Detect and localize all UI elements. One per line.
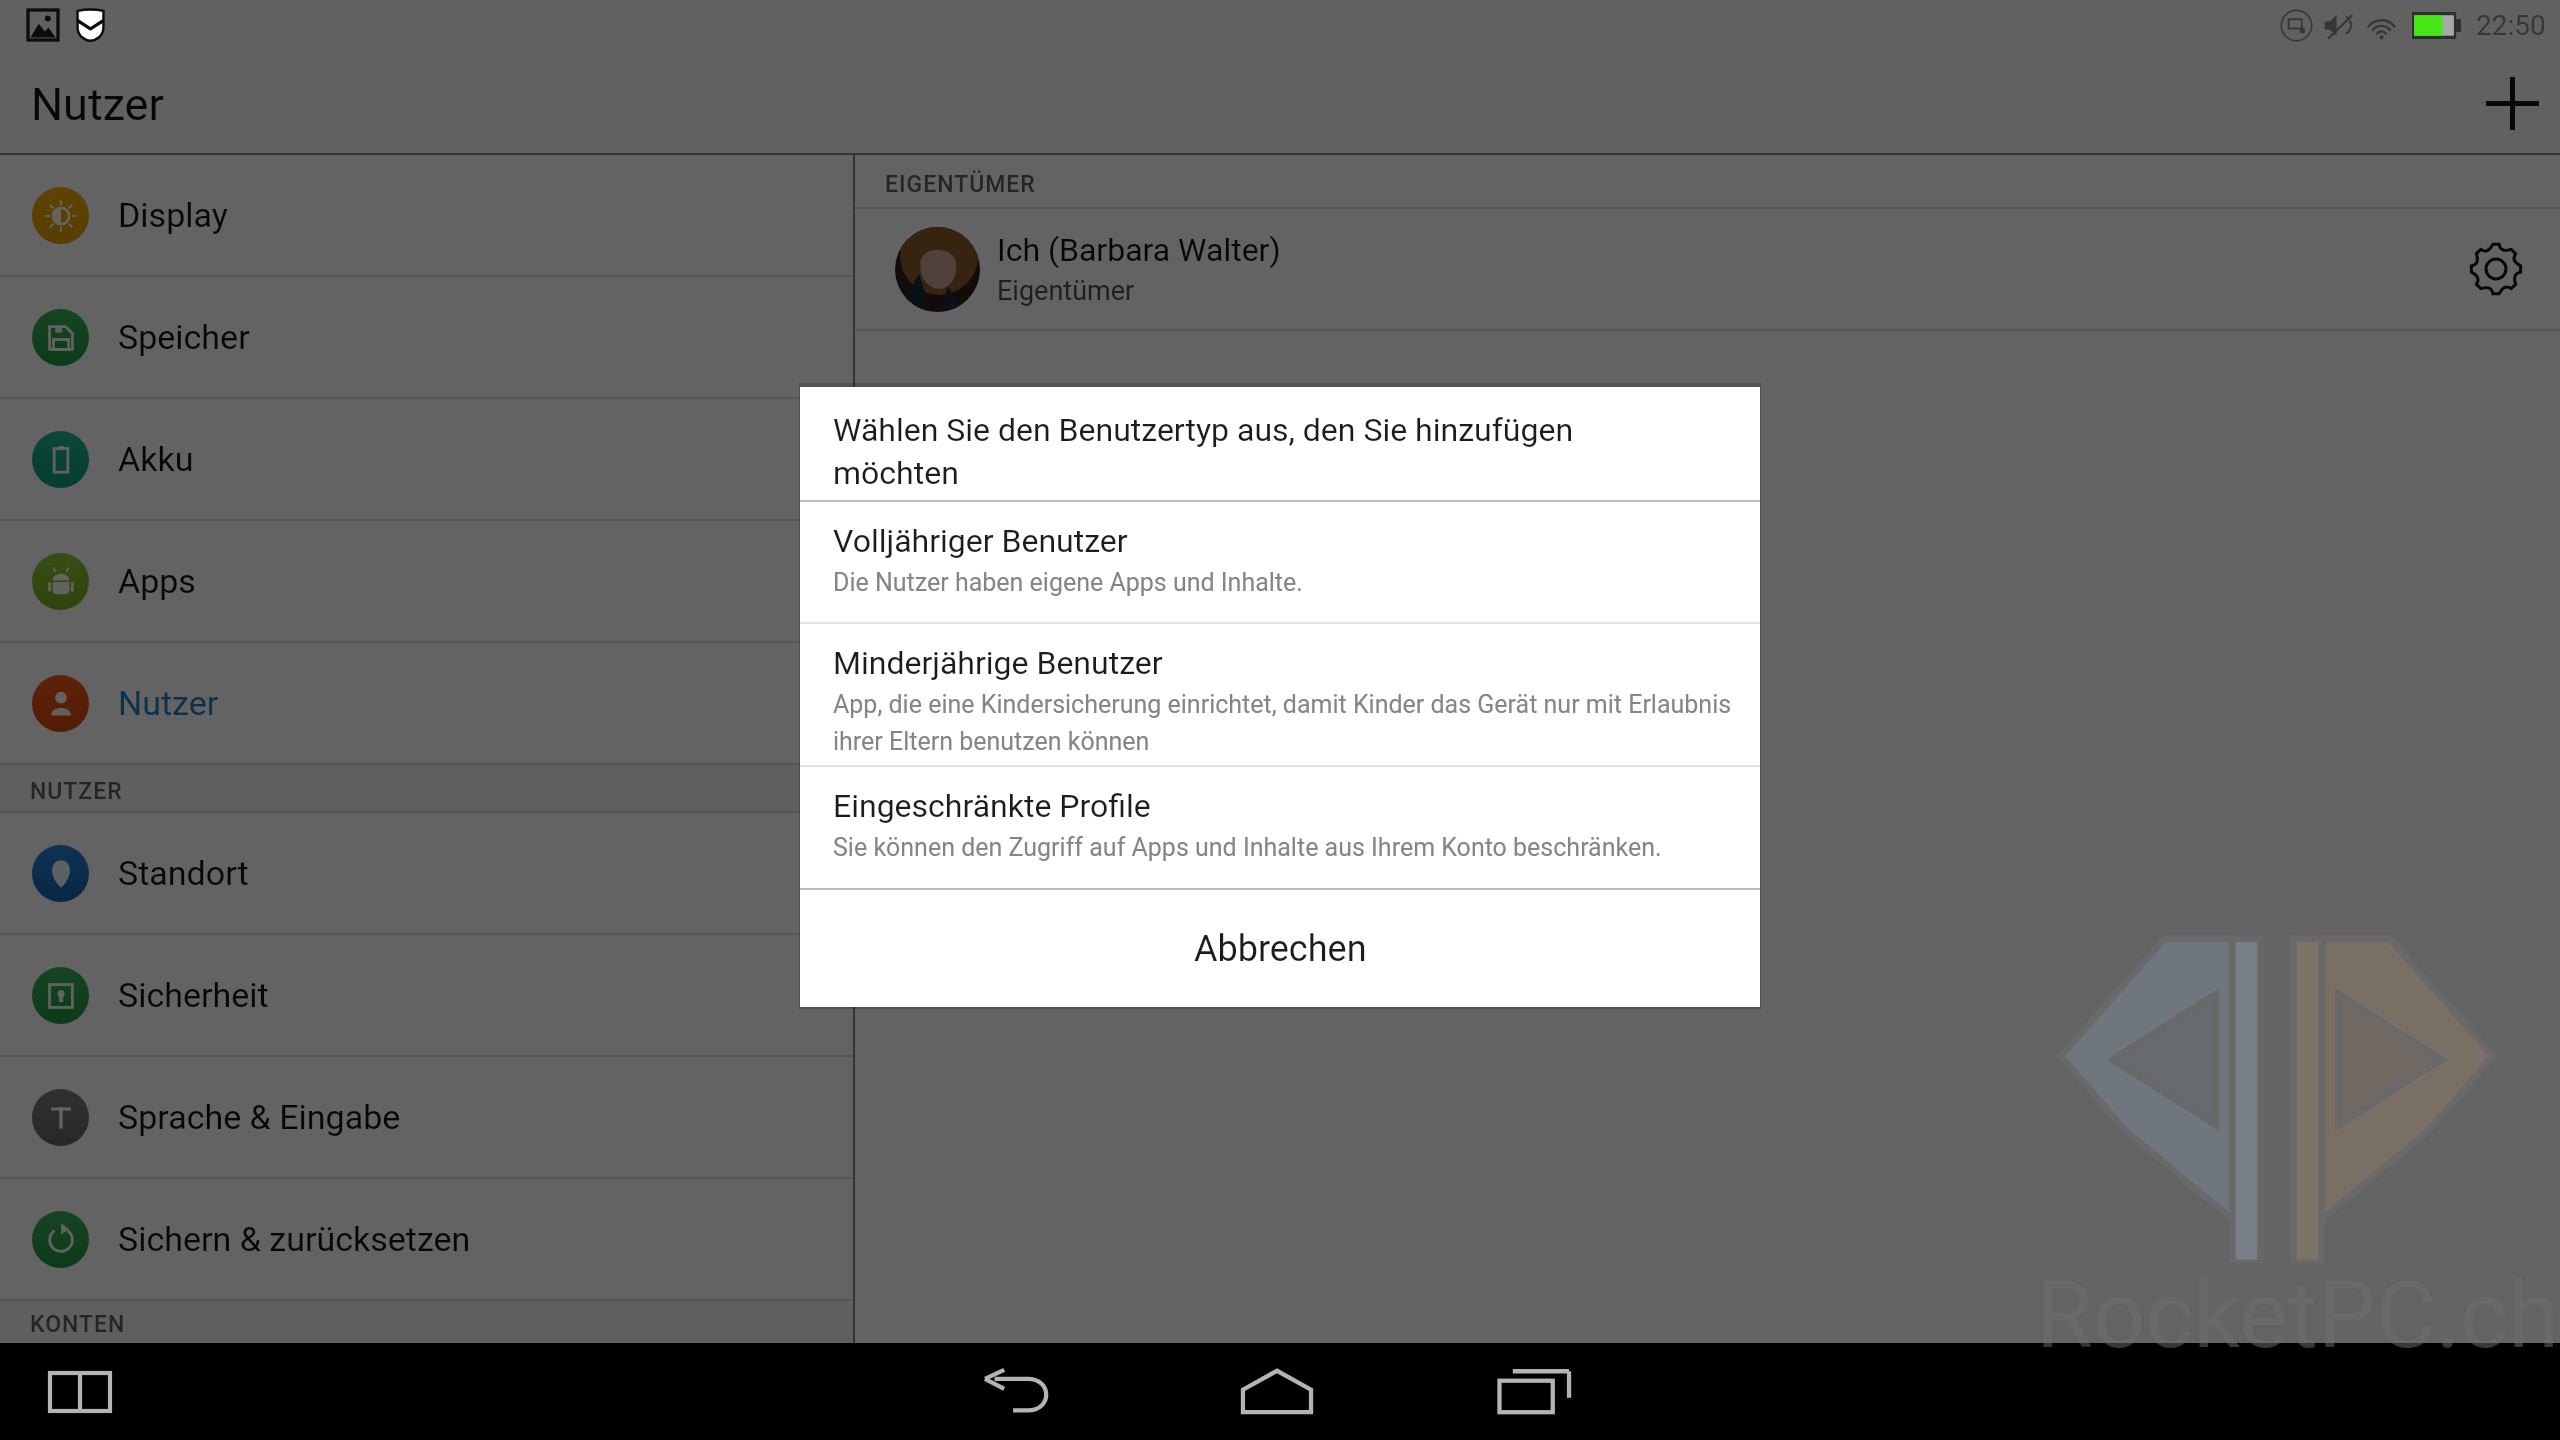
button[interactable]: Einstellungen — [2450, 223, 2542, 315]
button[interactable]: Speicher — [0, 277, 853, 399]
button[interactable]: Minderjährige Benutzer — [800, 624, 1760, 765]
button[interactable]: Display — [0, 155, 853, 277]
staticText: EIGENTÜMER — [885, 171, 1036, 198]
button[interactable]: Zurück — [964, 1343, 1074, 1440]
staticText: 22:50 — [2476, 9, 2546, 42]
button[interactable]: Apps — [0, 521, 853, 643]
button[interactable]: Geteilter Bildschirm — [20, 1343, 140, 1440]
staticText: Eingeschränkte Profile — [833, 787, 1151, 825]
staticText: Nutzer — [31, 78, 164, 131]
staticText: App, die eine Kindersicherung einrichtet… — [833, 690, 1732, 756]
button[interactable]: Eingeschränkte Profile — [800, 767, 1760, 888]
staticText: Sie können den Zugriff auf Apps und Inha… — [833, 833, 1662, 862]
button[interactable]: Sprache & Eingabe — [0, 1057, 853, 1179]
staticText: Sichern & zurücksetzen — [118, 1219, 471, 1259]
staticText: Wählen Sie den Benutzertyp aus, den Sie … — [833, 411, 1600, 492]
staticText: Standort — [118, 853, 249, 893]
button[interactable]: Übersicht — [1480, 1343, 1590, 1440]
staticText: Abbrechen — [1194, 928, 1367, 970]
staticText: Nutzer — [118, 683, 219, 723]
button[interactable]: Sichern & zurücksetzen — [0, 1179, 853, 1301]
staticText: Speicher — [118, 317, 250, 357]
staticText: Eigentümer — [997, 275, 1135, 307]
button[interactable]: Abbrechen — [800, 890, 1760, 1007]
staticText: Ich (Barbara Walter) — [997, 231, 1281, 269]
button[interactable]: Volljähriger Benutzer — [800, 502, 1760, 622]
staticText: Sicherheit — [118, 975, 269, 1015]
staticText: Volljähriger Benutzer — [833, 522, 1128, 560]
button[interactable]: Sicherheit — [0, 935, 853, 1057]
staticText: Sprache & Eingabe — [118, 1097, 401, 1137]
button[interactable]: Standort — [0, 813, 853, 935]
button[interactable]: Nutzer — [0, 643, 853, 765]
button[interactable]: Startseite — [1222, 1343, 1332, 1440]
staticText: Minderjährige Benutzer — [833, 644, 1163, 682]
button[interactable]: Akku — [0, 399, 853, 521]
staticText: Display — [118, 195, 228, 235]
staticText: Akku — [118, 439, 194, 479]
staticText: NUTZER — [30, 778, 123, 805]
button[interactable]: Ich (Barbara Walter) — [855, 209, 2560, 329]
button[interactable]: Nutzer hinzufügen — [2467, 58, 2557, 148]
staticText: KONTEN — [30, 1311, 126, 1338]
staticText: Die Nutzer haben eigene Apps und Inhalte… — [833, 568, 1303, 597]
staticText: RocketPC.ch — [2036, 1262, 2559, 1370]
staticText: Apps — [118, 561, 196, 601]
